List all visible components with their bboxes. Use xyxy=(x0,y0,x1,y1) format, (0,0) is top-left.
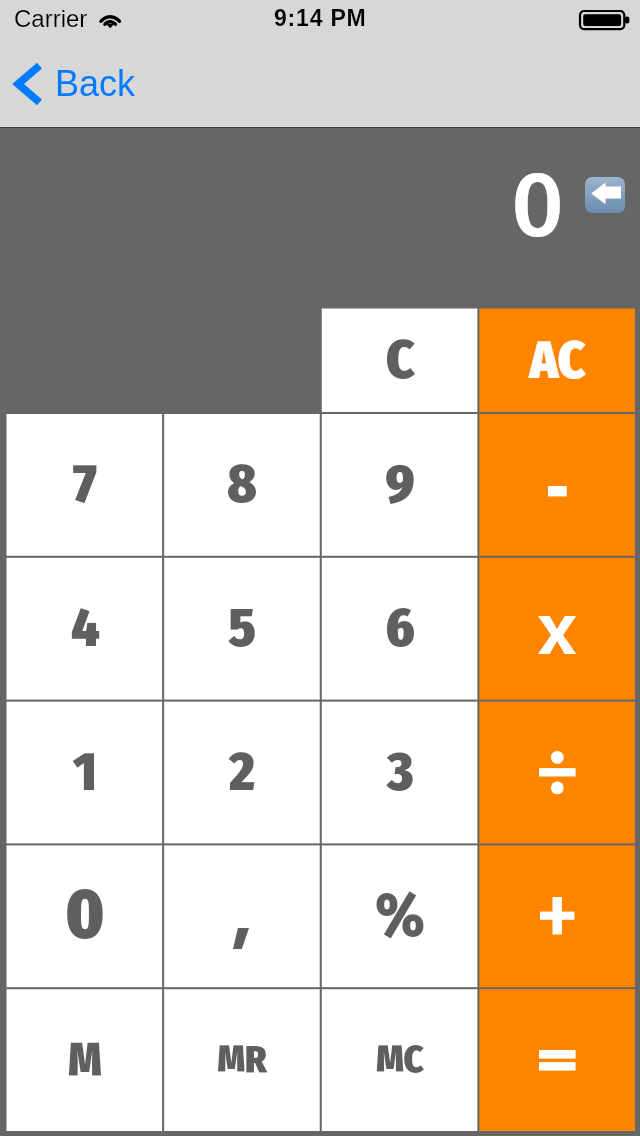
button[interactable]: 9 xyxy=(321,413,479,557)
staticText: 4 xyxy=(71,596,100,661)
button[interactable]: 8 xyxy=(163,413,321,557)
staticText: MR xyxy=(217,1036,267,1082)
button[interactable]: 5 xyxy=(163,557,321,701)
button[interactable]: MC xyxy=(321,988,479,1132)
staticText: C xyxy=(386,328,415,393)
staticText: 1 xyxy=(73,740,97,805)
staticText: % xyxy=(375,879,425,952)
button[interactable]: MR xyxy=(163,988,321,1132)
staticText: Back xyxy=(55,63,136,103)
button[interactable]: C xyxy=(321,308,479,414)
staticText: MC xyxy=(376,1036,424,1082)
staticText: M xyxy=(68,1032,102,1087)
button[interactable]: - xyxy=(478,413,636,557)
button[interactable]: 6 xyxy=(321,557,479,701)
button[interactable]: 2 xyxy=(163,701,321,845)
staticText: 2 xyxy=(229,740,255,805)
button[interactable]: 4 xyxy=(6,557,164,701)
staticText: 0 xyxy=(511,150,564,260)
button[interactable]: M xyxy=(6,988,164,1132)
button[interactable] xyxy=(163,844,321,988)
button[interactable]: Back xyxy=(8,44,123,124)
staticText: 0 xyxy=(65,873,105,957)
staticText: 6 xyxy=(385,596,415,661)
staticText: 7 xyxy=(73,452,97,517)
button[interactable]: Backspace xyxy=(585,177,625,213)
staticText: 3 xyxy=(387,740,414,805)
button[interactable]: = xyxy=(478,988,636,1132)
button[interactable]: AC xyxy=(478,308,636,414)
button[interactable]: / xyxy=(478,701,636,845)
staticText: AC xyxy=(529,329,586,391)
button[interactable]: 1 xyxy=(6,701,164,845)
staticText: 5 xyxy=(228,596,256,661)
staticText: Carrier xyxy=(14,5,88,32)
button[interactable]: x xyxy=(478,557,636,701)
button[interactable]: + xyxy=(478,844,636,988)
staticText: 9 xyxy=(385,452,415,517)
staticText: 8 xyxy=(227,452,257,517)
button[interactable]: 3 xyxy=(321,701,479,845)
button[interactable]: % xyxy=(321,844,479,988)
staticText: 9:14 PM xyxy=(274,5,367,31)
button[interactable]: 0 xyxy=(6,844,164,988)
button[interactable]: 7 xyxy=(6,413,164,557)
